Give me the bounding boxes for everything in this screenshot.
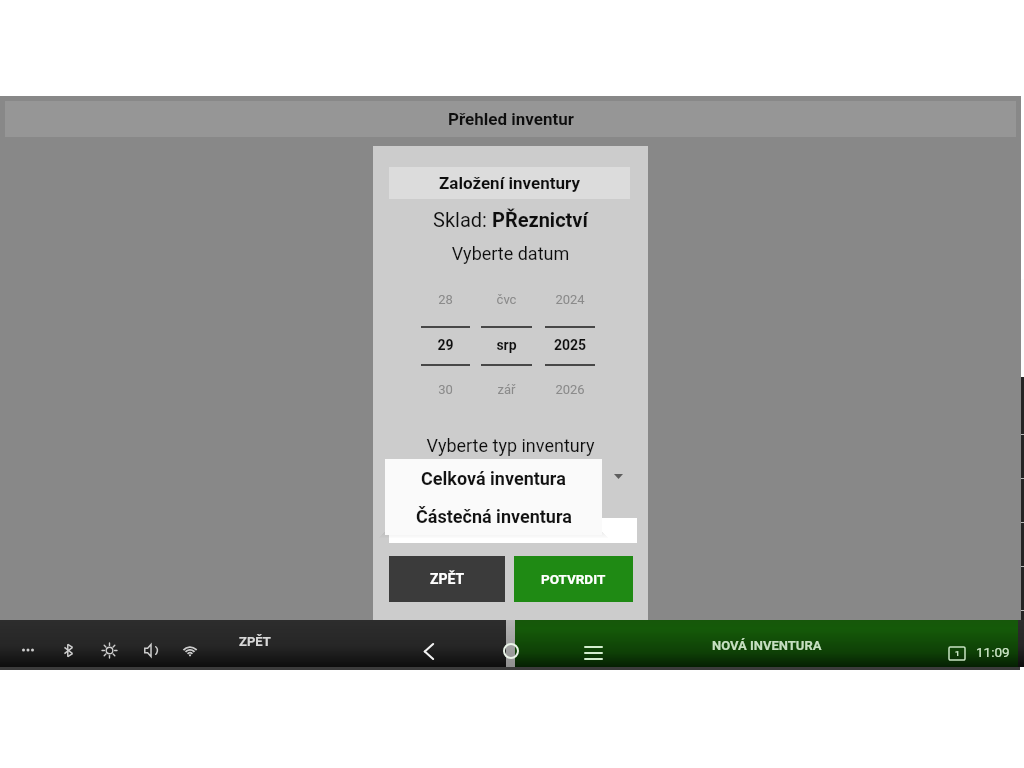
staticText: ZPĚT bbox=[430, 571, 465, 587]
button[interactable]: Volume bbox=[133, 633, 167, 667]
staticText: srp bbox=[481, 337, 532, 353]
button[interactable]: ZPĚT bbox=[389, 556, 505, 602]
button[interactable]: POTVRDIT bbox=[514, 556, 633, 602]
button[interactable]: Menu bbox=[575, 639, 612, 666]
staticText: 1 bbox=[955, 649, 960, 658]
staticText: Celková inventura bbox=[421, 468, 566, 489]
staticText: 2025 bbox=[545, 337, 595, 353]
staticText: NOVÁ INVENTURA bbox=[712, 638, 822, 653]
button[interactable]: Back bbox=[411, 634, 445, 668]
button[interactable]: Celková inventura bbox=[385, 459, 602, 497]
button[interactable]: Wi-Fi bbox=[173, 633, 207, 667]
staticText: 29 bbox=[421, 337, 470, 353]
staticText: Založení inventury bbox=[439, 173, 580, 193]
button[interactable]: Home bbox=[499, 639, 523, 663]
button[interactable]: Přehled inventur bbox=[5, 101, 1016, 137]
button[interactable]: NOVÁ INVENTURA bbox=[712, 635, 822, 655]
staticText: ZPĚT bbox=[239, 634, 271, 649]
button[interactable]: Brightness bbox=[92, 633, 126, 667]
button[interactable] bbox=[389, 518, 637, 543]
staticText: 28 bbox=[421, 292, 470, 307]
staticText: Přehled inventur bbox=[448, 109, 574, 129]
staticText: Částečná inventura bbox=[416, 506, 572, 527]
staticText: 2024 bbox=[545, 292, 595, 307]
button[interactable]: Částečná inventura bbox=[385, 497, 602, 535]
other: Windows bbox=[949, 647, 965, 660]
staticText: POTVRDIT bbox=[541, 571, 606, 587]
staticText: Vyberte typ inventury bbox=[373, 435, 648, 456]
staticText: Vyberte datum bbox=[373, 243, 648, 264]
button[interactable]: ZPĚT bbox=[225, 628, 285, 654]
staticText: 11:09 bbox=[976, 644, 1010, 660]
staticText: 30 bbox=[421, 382, 470, 397]
staticText: Sklad: bbox=[433, 208, 492, 231]
button[interactable]: More bbox=[11, 633, 45, 667]
staticText: PŘeznictví bbox=[492, 208, 588, 231]
staticText: 2026 bbox=[545, 382, 595, 397]
staticText: čvc bbox=[481, 292, 532, 307]
button[interactable]: Založení inventury bbox=[389, 167, 630, 199]
button[interactable]: Bluetooth bbox=[51, 633, 85, 667]
staticText: zář bbox=[481, 382, 532, 397]
